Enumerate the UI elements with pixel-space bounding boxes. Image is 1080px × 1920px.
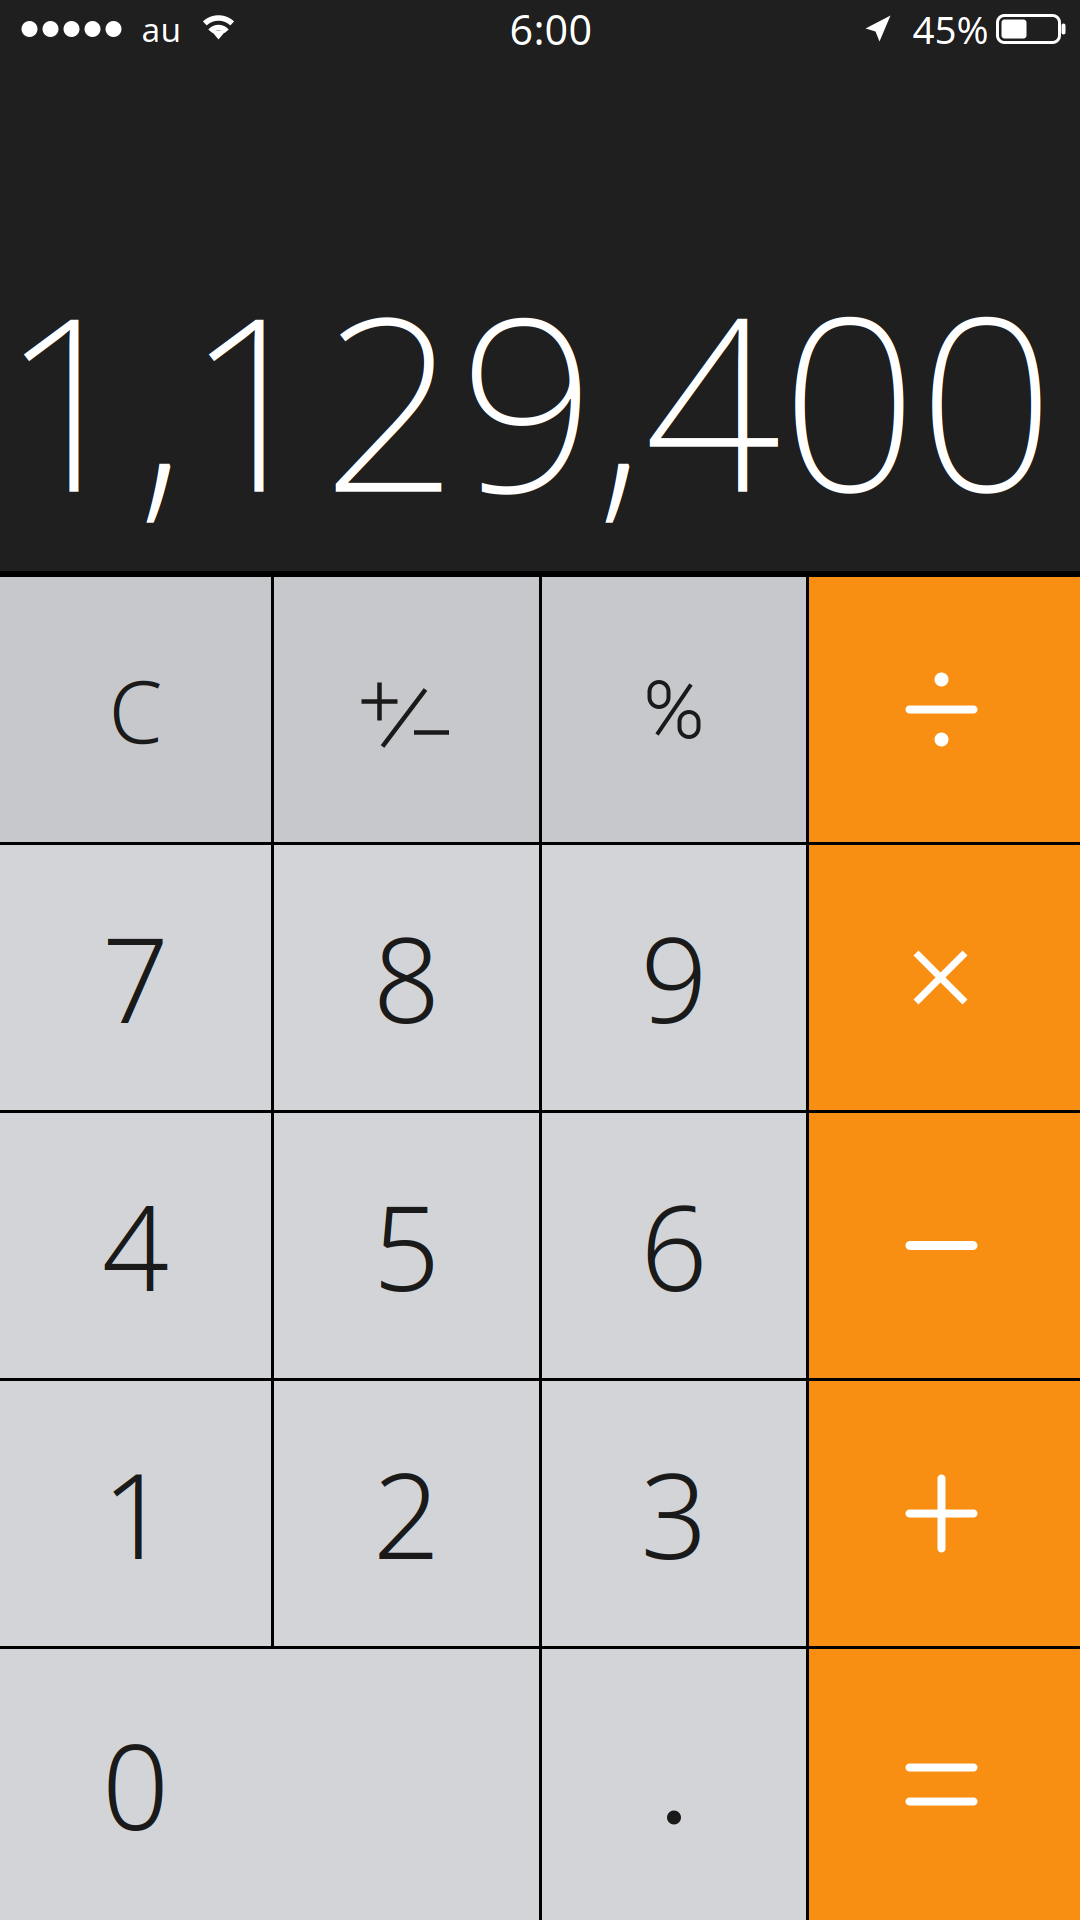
staticText: au	[141, 7, 181, 51]
button[interactable]: 6	[542, 1113, 806, 1378]
button[interactable]: Multiply	[809, 845, 1080, 1110]
button[interactable]: 3	[542, 1381, 806, 1646]
button[interactable]: Divide	[809, 577, 1080, 842]
staticText: 4	[102, 1168, 169, 1323]
staticText: 6:00	[509, 2, 592, 56]
staticText: 7	[102, 900, 169, 1055]
button[interactable]: Percent	[542, 577, 806, 842]
button[interactable]: 4	[0, 1113, 271, 1378]
staticText: 6	[640, 1168, 707, 1323]
staticText: 5	[373, 1168, 440, 1323]
button[interactable]: 1	[0, 1381, 271, 1646]
button[interactable]: 2	[274, 1381, 539, 1646]
staticText: 1,129,400	[0, 239, 1055, 558]
staticText: C	[108, 652, 162, 767]
button[interactable]: Plus	[809, 1381, 1080, 1646]
staticText: 45%	[912, 3, 988, 55]
button[interactable]: 7	[0, 845, 271, 1110]
staticText: 1	[102, 1436, 169, 1591]
button[interactable]: C	[0, 577, 271, 842]
staticText: 9	[640, 900, 707, 1055]
staticText: 3	[640, 1436, 707, 1591]
button[interactable]: 5	[274, 1113, 539, 1378]
staticText: 0	[102, 1707, 169, 1862]
button[interactable]: 8	[274, 845, 539, 1110]
button[interactable]: 9	[542, 845, 806, 1110]
staticText: 2	[373, 1436, 440, 1591]
staticText: 8	[373, 900, 440, 1055]
button[interactable]: Minus	[809, 1113, 1080, 1378]
button[interactable]: 0	[0, 1649, 539, 1920]
button[interactable]: Decimal point	[542, 1649, 806, 1920]
button[interactable]: Equals	[809, 1649, 1080, 1920]
button[interactable]: Plus minus	[274, 577, 539, 842]
